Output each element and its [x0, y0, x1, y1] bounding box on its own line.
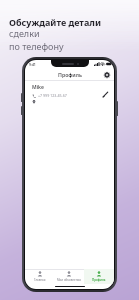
staticText: Профиль — [58, 71, 82, 78]
button[interactable]: Mike — [25, 81, 114, 107]
staticText: Mike — [32, 84, 44, 91]
staticText: Главная — [34, 278, 46, 282]
button[interactable]: Мои объявления — [54, 269, 84, 284]
staticText: по телефону — [9, 40, 64, 52]
button[interactable]: Settings — [102, 70, 111, 79]
staticText: +7 999 123-45-67 — [38, 93, 67, 98]
button[interactable]: Edit profile — [100, 89, 110, 99]
staticText: Обсуждайте детали сделки — [9, 16, 133, 39]
button[interactable]: Главная — [25, 269, 54, 284]
staticText: 9:41 — [29, 62, 36, 67]
staticText: Профиль — [92, 278, 106, 282]
button[interactable]: Профиль — [84, 269, 114, 284]
staticText: Мои объявления — [57, 278, 81, 282]
